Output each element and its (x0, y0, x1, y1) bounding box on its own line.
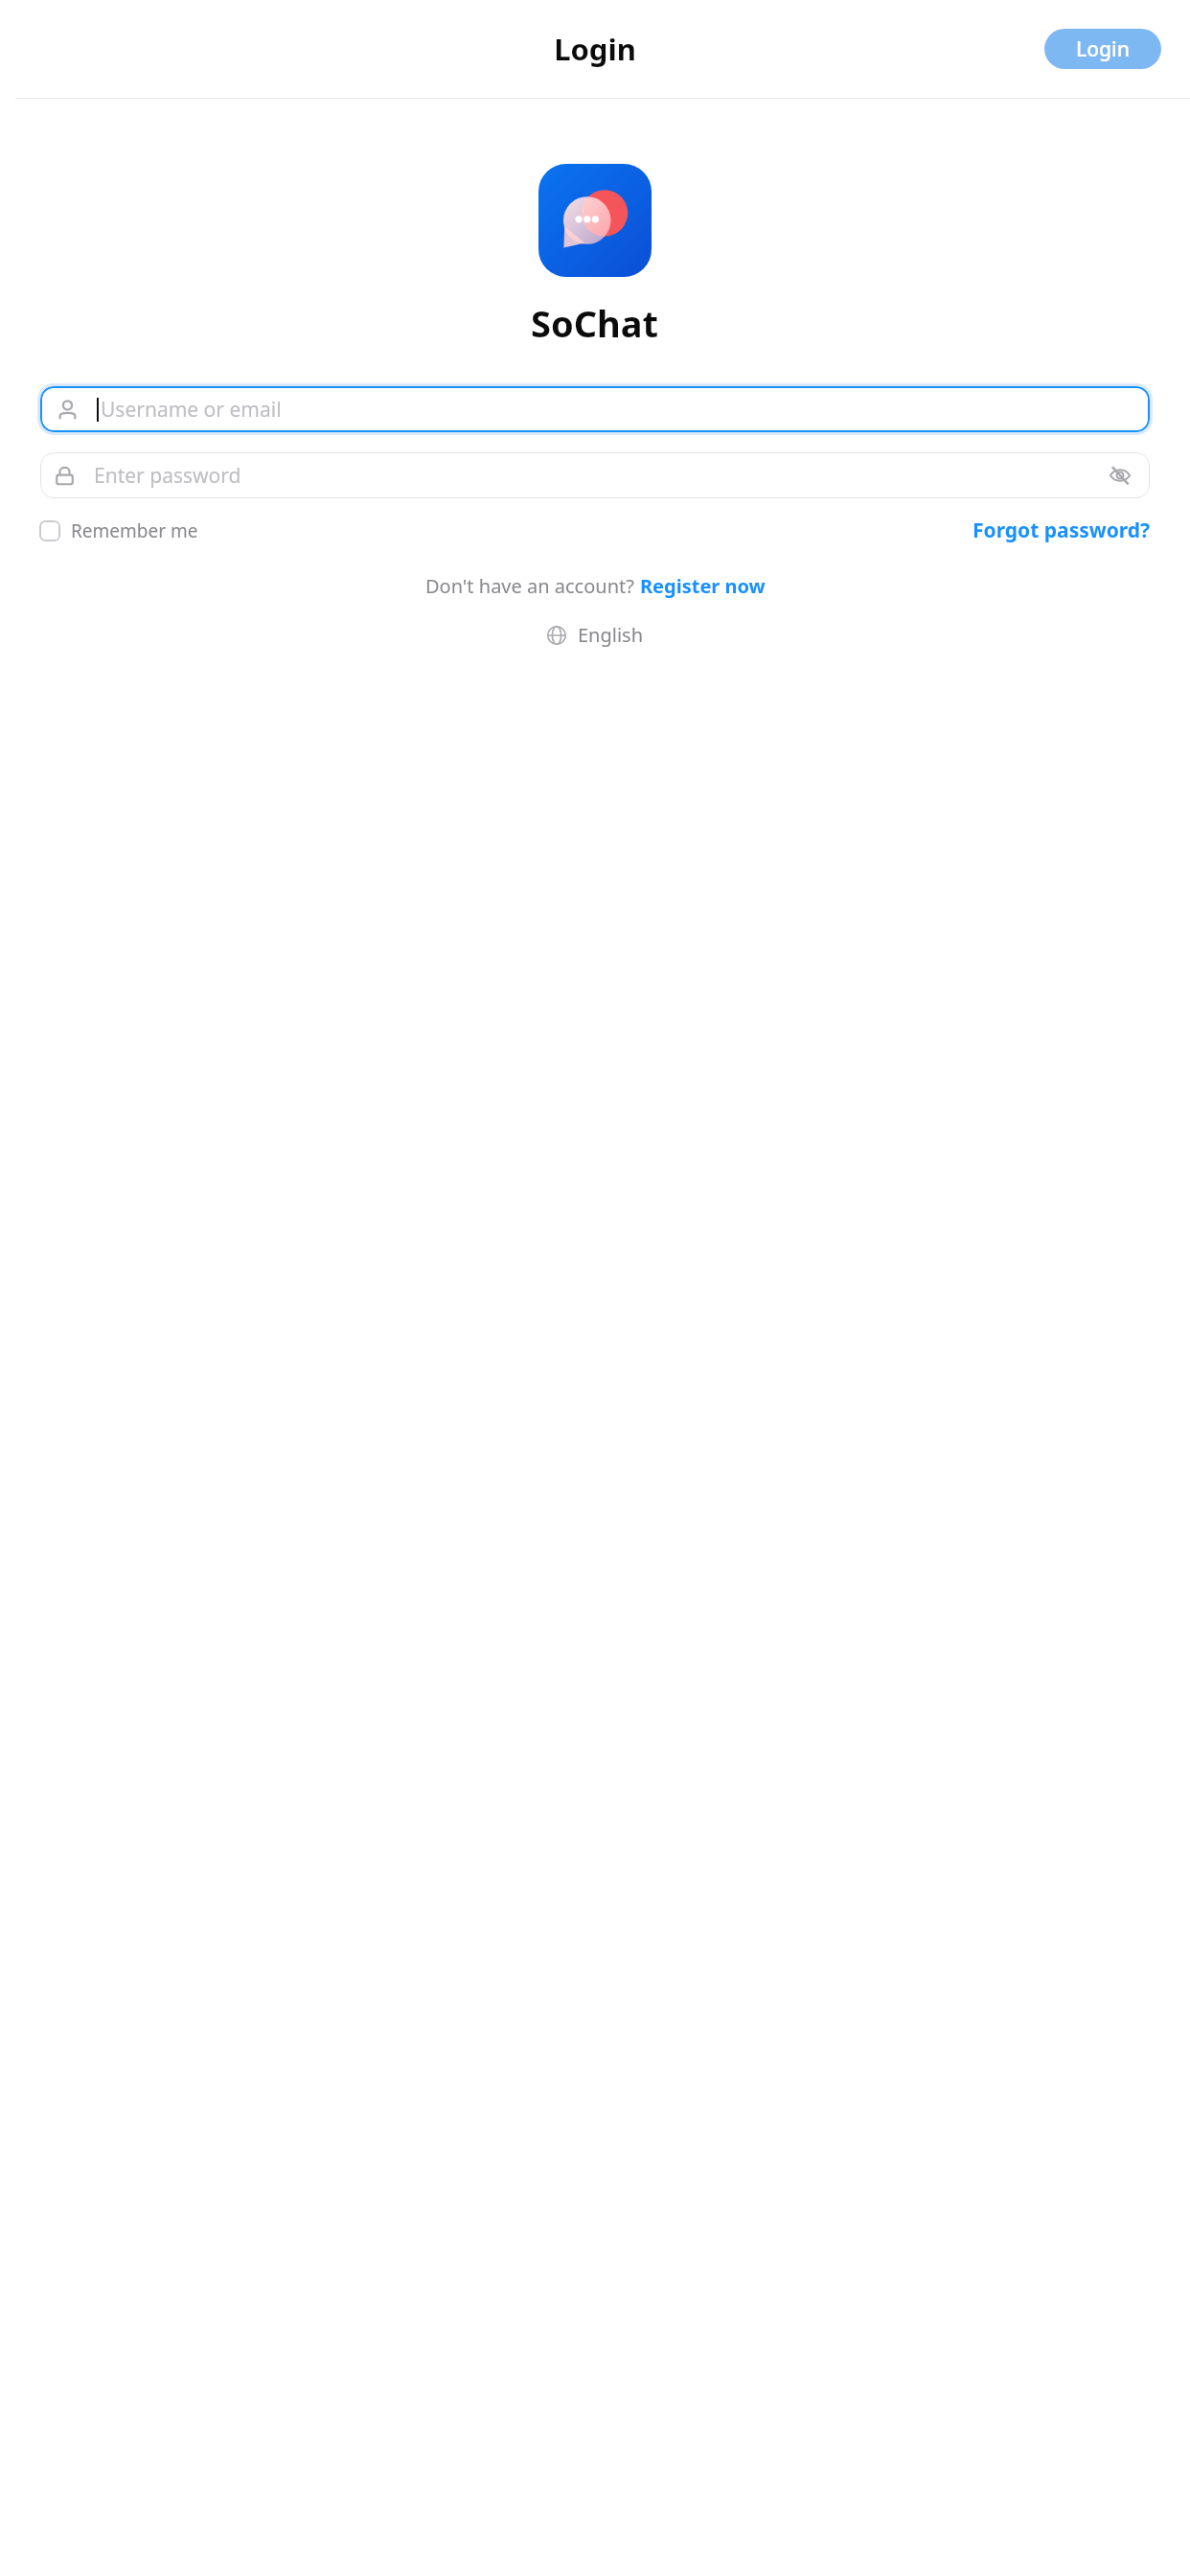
button[interactable]: Forgot password? (973, 517, 1151, 544)
staticText: Don't have an account? (425, 573, 640, 599)
staticText: Forgot password? (973, 517, 1151, 544)
staticText: SoChat (531, 298, 659, 348)
button[interactable]: Remember me (39, 518, 198, 543)
staticText: Register now (640, 573, 766, 599)
button[interactable]: English (540, 618, 650, 652)
button[interactable]: Show password (1104, 459, 1136, 492)
staticText: Username or email (101, 396, 282, 424)
staticText: Remember me (71, 518, 198, 543)
button[interactable]: Username or email (40, 386, 1150, 432)
button[interactable]: Register now (640, 573, 766, 599)
staticText: Login (554, 29, 636, 69)
button[interactable]: Enter password (40, 452, 1150, 498)
staticText: Enter password (94, 462, 241, 490)
staticText: English (578, 622, 644, 648)
button[interactable]: Login (1044, 29, 1161, 69)
staticText: Login (1076, 35, 1130, 63)
